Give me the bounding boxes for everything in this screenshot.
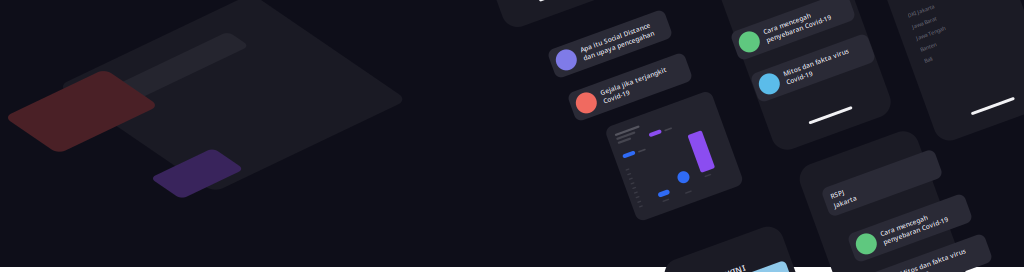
staticText: Cara mencegah xyxy=(763,17,813,26)
staticText: Apa itu Social Distance xyxy=(580,35,654,44)
staticText: Banten xyxy=(904,32,921,39)
staticText: Mitos dan fakta virus xyxy=(783,59,852,68)
staticText: Jakarta xyxy=(829,183,853,192)
button[interactable]: Mitos dan fakta virus xyxy=(868,253,992,272)
staticText: penyebaran Covid-19 xyxy=(880,228,949,237)
button[interactable]: Cara mencegah xyxy=(731,11,855,41)
staticText: Jawa Barat xyxy=(904,8,930,15)
staticText: Bali xyxy=(904,44,912,51)
button[interactable]: RSPJ xyxy=(822,168,942,198)
staticText: dan upaya pencegahan xyxy=(580,44,655,53)
staticText: Covid-19 xyxy=(783,68,811,77)
staticText: Mitos dan fakta virus xyxy=(900,259,969,268)
staticText: Cara mencegah xyxy=(880,219,930,228)
button[interactable]: Cara mencegah xyxy=(848,213,972,243)
staticText: Gejala jika terjangkit xyxy=(600,78,670,87)
staticText: Jawa Tengah xyxy=(904,20,935,27)
staticText: Covid-19 xyxy=(600,87,628,96)
staticText: BERITA TERKINI xyxy=(721,261,782,272)
button[interactable]: Mitos dan fakta virus xyxy=(751,53,875,83)
button[interactable]: Apa itu Social Distance xyxy=(548,29,672,59)
staticText: Covid-19 xyxy=(900,268,928,272)
staticText: penyebaran Covid-19 xyxy=(763,26,832,35)
button[interactable]: Gejala jika terjangkit xyxy=(568,72,692,102)
